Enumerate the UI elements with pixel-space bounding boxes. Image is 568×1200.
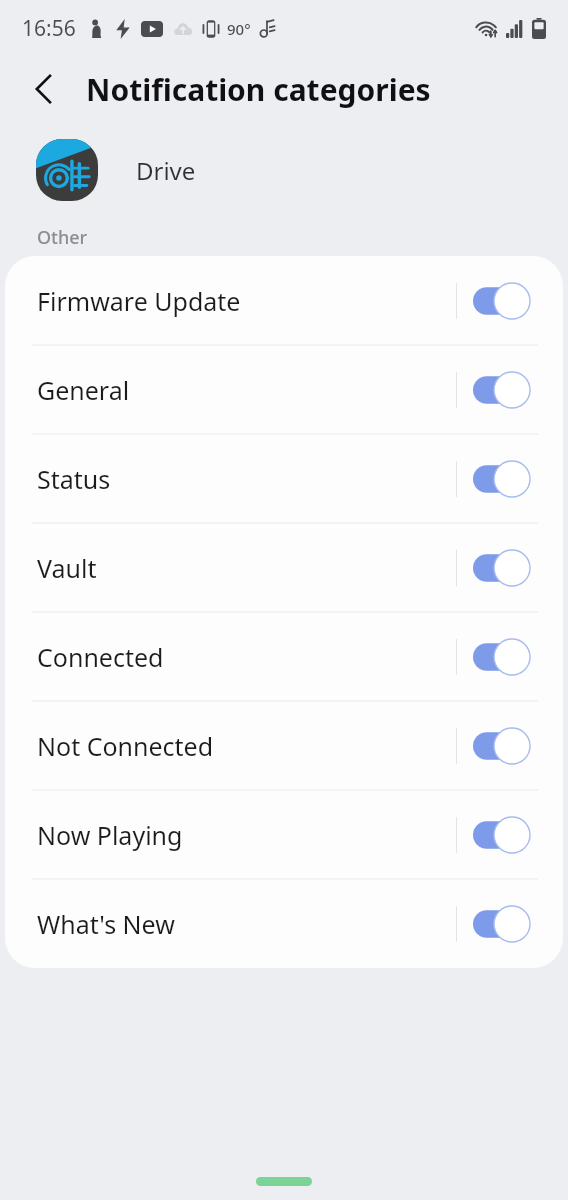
staticText: General	[37, 373, 130, 407]
staticText: Other	[37, 225, 88, 250]
staticText: Not Connected	[37, 729, 214, 763]
button[interactable]: Now Playing	[5, 790, 563, 879]
button[interactable]: General	[5, 345, 563, 434]
button[interactable]: Status	[5, 434, 563, 523]
button[interactable]: What's New	[5, 879, 563, 968]
button[interactable]: Toggle on	[473, 727, 531, 765]
staticText: Connected	[37, 640, 164, 674]
staticText: 16:56	[22, 14, 76, 43]
staticText: Vault	[37, 551, 97, 585]
button[interactable]: Vault	[5, 523, 563, 612]
staticText: Firmware Update	[37, 284, 241, 318]
button[interactable]: Toggle on	[473, 549, 531, 587]
button[interactable]: Toggle on	[473, 282, 531, 320]
button[interactable]: Toggle on	[473, 371, 531, 409]
staticText: Now Playing	[37, 818, 183, 852]
staticText: Status	[37, 462, 111, 496]
button[interactable]: Back	[26, 71, 62, 107]
staticText: Drive	[136, 154, 196, 187]
button[interactable]: Drive	[0, 122, 568, 218]
staticText: What's New	[37, 907, 175, 941]
button[interactable]: Toggle on	[473, 638, 531, 676]
staticText: Notification categories	[86, 69, 431, 110]
button[interactable]: Toggle on	[473, 460, 531, 498]
button[interactable]: Firmware Update	[5, 256, 563, 345]
button[interactable]: Not Connected	[5, 701, 563, 790]
staticText: 90°	[227, 19, 251, 39]
button[interactable]: Toggle on	[473, 905, 531, 943]
button[interactable]: Toggle on	[473, 816, 531, 854]
button[interactable]: Connected	[5, 612, 563, 701]
